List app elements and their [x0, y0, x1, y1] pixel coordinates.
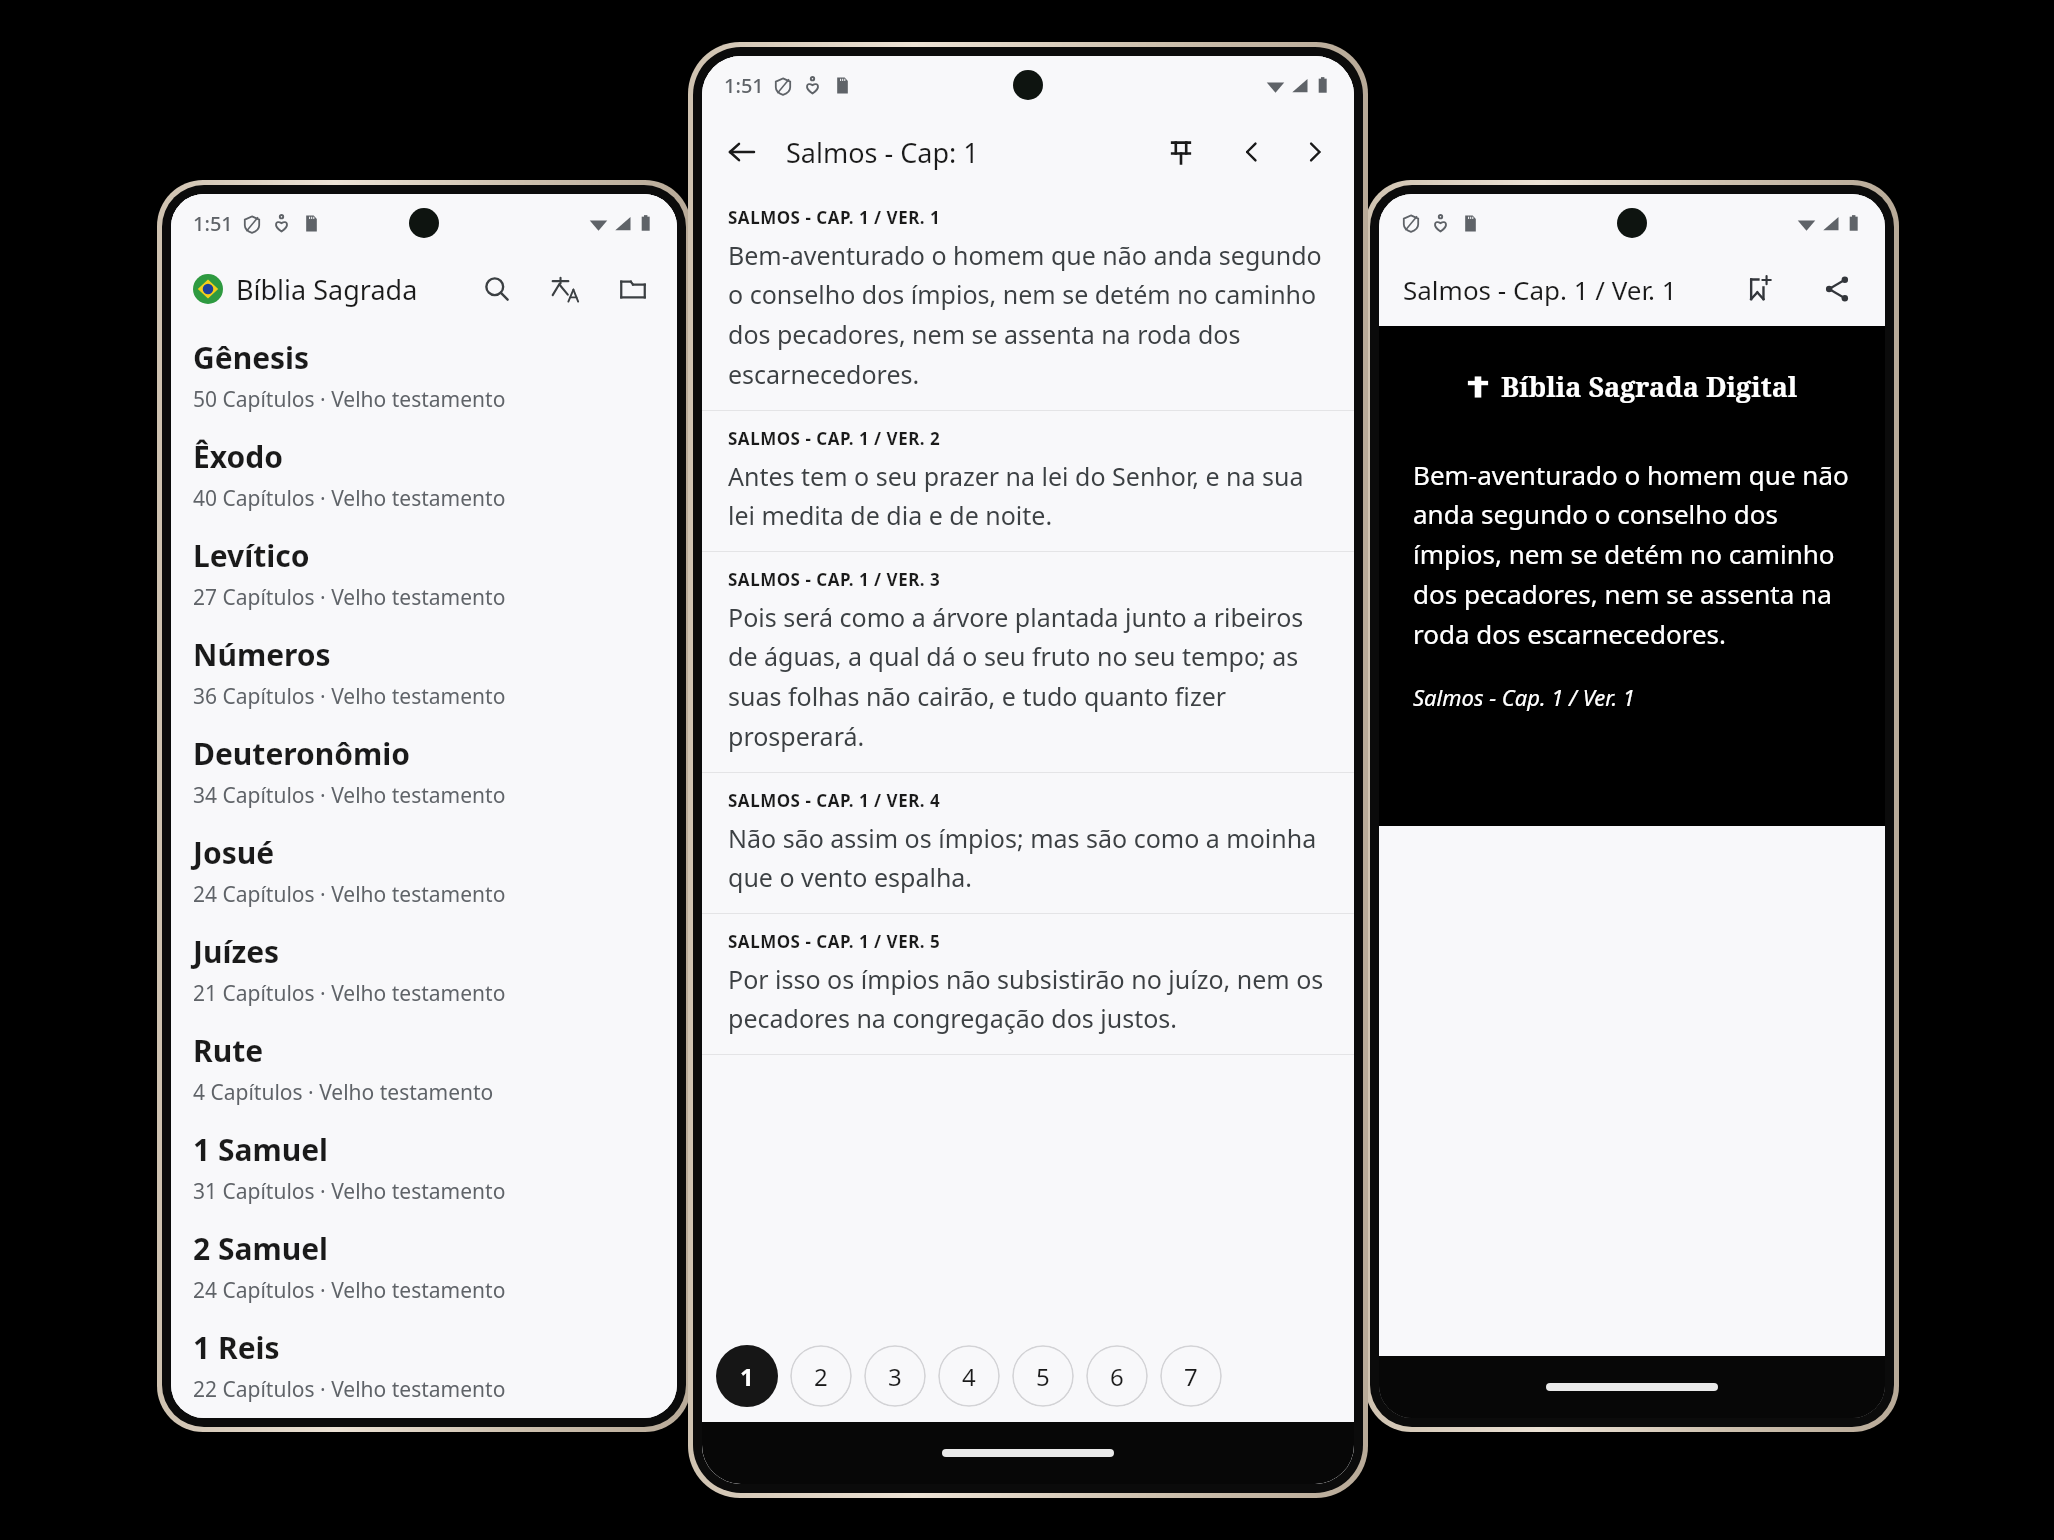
staticText: 5	[1036, 1360, 1050, 1393]
staticText: Salmos - Cap. 1 / Ver. 1	[1413, 682, 1635, 712]
button[interactable]: Salvar	[1735, 265, 1783, 313]
button[interactable]: Pastas	[611, 267, 655, 311]
staticText: SALMOS - CAP. 1 / VER. 5	[728, 930, 941, 953]
staticText: 1 Reis	[193, 1327, 280, 1368]
staticText: 7	[1184, 1360, 1198, 1393]
button[interactable]: SALMOS - CAP. 1 / VER. 5	[702, 914, 1354, 1054]
button[interactable]: 6	[1086, 1345, 1148, 1407]
button[interactable]: 2	[790, 1345, 852, 1407]
staticText: 1:51	[193, 210, 233, 237]
staticText: 40 Capítulos · Velho testamento	[193, 484, 506, 513]
staticText: SALMOS - CAP. 1 / VER. 4	[728, 789, 941, 812]
staticText: SALMOS - CAP. 1 / VER. 1	[728, 206, 941, 229]
staticText: 1 Samuel	[193, 1129, 329, 1170]
staticText: Por isso os ímpios não subsistirão no ju…	[728, 962, 1328, 1036]
button[interactable]: Próximo capítulo	[1290, 127, 1340, 177]
button[interactable]: Fixar	[1156, 127, 1206, 177]
staticText: 2 Samuel	[193, 1228, 329, 1269]
button[interactable]: Gênesis	[171, 326, 677, 425]
button[interactable]: Voltar	[716, 126, 768, 178]
staticText: Deuteronômio	[193, 733, 411, 774]
staticText: 34 Capítulos · Velho testamento	[193, 781, 506, 810]
button[interactable]: Rute	[171, 1019, 677, 1118]
button[interactable]: Deuteronômio	[171, 722, 677, 821]
staticText: Bem-aventurado o homem que não anda segu…	[1413, 457, 1851, 652]
staticText: 2	[814, 1360, 828, 1393]
button[interactable]: Buscar	[475, 267, 519, 311]
staticText: 50 Capítulos · Velho testamento	[193, 385, 506, 414]
staticText: Não são assim os ímpios; mas são como a …	[728, 821, 1328, 895]
staticText: 1:51	[724, 72, 764, 99]
button[interactable]: Levítico	[171, 524, 677, 623]
button[interactable]: 1	[716, 1345, 778, 1407]
button[interactable]: 1 Samuel	[171, 1118, 677, 1217]
button[interactable]: 4	[938, 1345, 1000, 1407]
button[interactable]: Capítulo anterior	[1226, 127, 1276, 177]
staticText: Êxodo	[193, 436, 283, 477]
button[interactable]: SALMOS - CAP. 1 / VER. 1	[702, 190, 1354, 410]
staticText: SALMOS - CAP. 1 / VER. 2	[728, 427, 941, 450]
staticText: 27 Capítulos · Velho testamento	[193, 583, 506, 612]
button[interactable]: Traduzir	[543, 267, 587, 311]
staticText: Antes tem o seu prazer na lei do Senhor,…	[728, 459, 1328, 533]
button[interactable]: Juízes	[171, 920, 677, 1019]
staticText: Salmos - Cap. 1 / Ver. 1	[1403, 272, 1677, 307]
button[interactable]: 1 Reis	[171, 1316, 677, 1415]
button[interactable]: Compartilhar	[1813, 265, 1861, 313]
staticText: Bem-aventurado o homem que não anda segu…	[728, 238, 1328, 392]
button[interactable]: 5	[1012, 1345, 1074, 1407]
staticText: 3	[888, 1360, 902, 1393]
staticText: 31 Capítulos · Velho testamento	[193, 1177, 506, 1206]
button[interactable]: 3	[864, 1345, 926, 1407]
staticText: Bíblia Sagrada Digital	[1501, 368, 1798, 405]
staticText: 24 Capítulos · Velho testamento	[193, 880, 506, 909]
staticText: Salmos - Cap: 1	[786, 134, 979, 171]
staticText: 36 Capítulos · Velho testamento	[193, 682, 506, 711]
staticText: Gênesis	[193, 337, 310, 378]
staticText: Rute	[193, 1030, 264, 1071]
button[interactable]: SALMOS - CAP. 1 / VER. 4	[702, 773, 1354, 913]
button[interactable]: 2 Samuel	[171, 1217, 677, 1316]
staticText: SALMOS - CAP. 1 / VER. 3	[728, 568, 941, 591]
button[interactable]: 7	[1160, 1345, 1222, 1407]
staticText: Juízes	[193, 931, 280, 972]
button[interactable]: Números	[171, 623, 677, 722]
button[interactable]: SALMOS - CAP. 1 / VER. 3	[702, 552, 1354, 772]
staticText: 4 Capítulos · Velho testamento	[193, 1078, 494, 1107]
staticText: 1	[740, 1360, 754, 1393]
staticText: 4	[962, 1360, 976, 1393]
staticText: 22 Capítulos · Velho testamento	[193, 1375, 506, 1404]
staticText: Pois será como a árvore plantada junto a…	[728, 600, 1328, 754]
button[interactable]: Josué	[171, 821, 677, 920]
staticText: 21 Capítulos · Velho testamento	[193, 979, 506, 1008]
staticText: 24 Capítulos · Velho testamento	[193, 1276, 506, 1305]
button[interactable]: SALMOS - CAP. 1 / VER. 2	[702, 411, 1354, 551]
staticText: 6	[1110, 1360, 1124, 1393]
staticText: Números	[193, 634, 331, 675]
button[interactable]: Êxodo	[171, 425, 677, 524]
staticText: Bíblia Sagrada	[236, 271, 418, 308]
staticText: Levítico	[193, 535, 310, 576]
staticText: Josué	[193, 832, 275, 873]
